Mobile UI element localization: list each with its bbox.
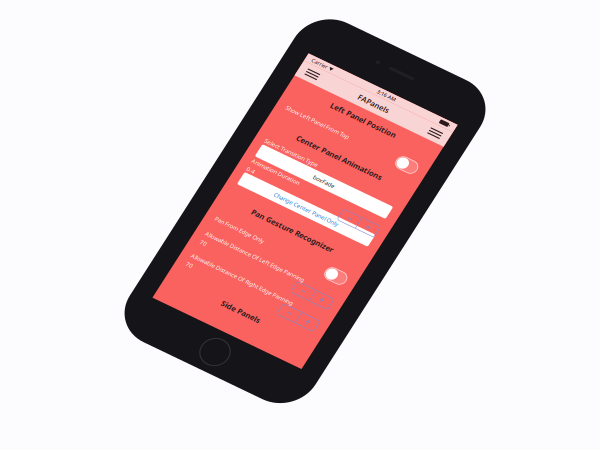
- button[interactable]: Select Transition Type: [69, 338, 398, 371]
- staticText: Select Transition Type: [69, 318, 202, 336]
- staticText: Center Panel Animations: [126, 277, 340, 300]
- button[interactable]: Open right panel: [366, 122, 410, 162]
- staticText: Show Left Panel From Top: [69, 228, 227, 246]
- button[interactable]: Show Left Panel From Top: [347, 221, 398, 252]
- button[interactable]: Decrease: [305, 392, 351, 421]
- staticText: 3:16 AM: [225, 104, 271, 120]
- staticText: FAPanels: [195, 130, 272, 153]
- staticText: Left Panel Position: [152, 175, 315, 198]
- staticText: boxFade: [207, 346, 260, 363]
